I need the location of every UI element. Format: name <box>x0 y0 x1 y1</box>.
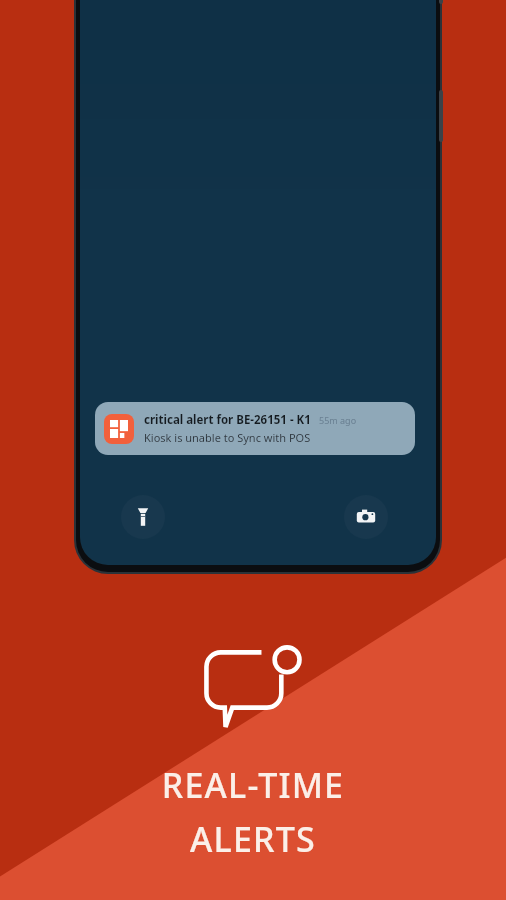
button[interactable]: critical alert for BE-26151 - K1 <box>95 402 415 455</box>
staticText: REAL-TIME <box>0 762 506 808</box>
button[interactable]: Camera <box>344 495 388 539</box>
staticText: Kiosk is unable to Sync with POS <box>144 430 311 445</box>
staticText: ALERTS <box>0 816 506 862</box>
button[interactable]: Flashlight <box>121 495 165 539</box>
staticText: critical alert for BE-26151 - K1 <box>144 412 311 428</box>
staticText: 55m ago <box>319 414 357 426</box>
